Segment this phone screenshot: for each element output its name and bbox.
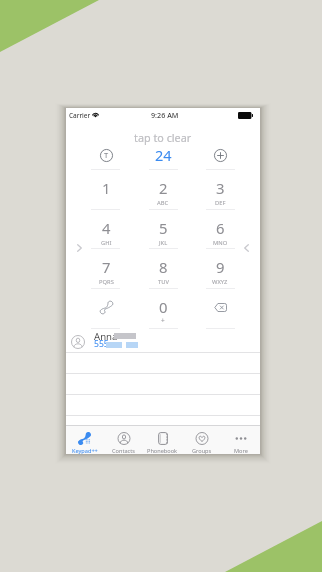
staticText: Anna (94, 330, 118, 343)
staticText: Phonebook (147, 447, 178, 455)
staticText: PQRS (99, 278, 114, 286)
button[interactable]: T9 search (91, 143, 121, 167)
button[interactable]: 24 (145, 143, 181, 167)
staticText: MNO (213, 239, 228, 247)
button[interactable]: Phonebook (143, 426, 182, 455)
staticText: DEF (215, 199, 226, 207)
staticText: 2 (159, 178, 168, 196)
button[interactable]: Delete (194, 289, 246, 328)
staticText: Keypad++ (72, 447, 98, 455)
button[interactable]: 7 (80, 249, 132, 288)
button[interactable]: 3 (194, 170, 246, 209)
staticText: Groups (192, 447, 212, 455)
button[interactable]: 1 (80, 170, 132, 209)
staticText: 6 (216, 218, 225, 236)
staticText: 7 (102, 257, 111, 275)
staticText: ABC (157, 199, 169, 207)
staticText: 24 (155, 145, 172, 165)
button[interactable]: Add contact (205, 143, 235, 167)
staticText: 9:26 AM (151, 110, 179, 120)
button[interactable]: 4 (80, 210, 132, 249)
button[interactable]: 6 (194, 210, 246, 249)
staticText: GHI (101, 239, 112, 247)
staticText: 8 (159, 257, 168, 275)
staticText: tap to clear (134, 130, 192, 145)
button[interactable]: Call (80, 289, 132, 328)
button[interactable]: Keypad++ (66, 426, 104, 455)
button[interactable]: Contacts (104, 426, 143, 455)
button[interactable]: 8 (137, 249, 189, 288)
button[interactable]: 0 (137, 289, 189, 328)
other: Previous page (244, 244, 249, 252)
staticText: Contacts (112, 447, 135, 455)
staticText: 4 (102, 218, 111, 236)
button[interactable]: More (221, 426, 260, 455)
staticText: 0 (159, 297, 168, 315)
button[interactable]: 5 (137, 210, 189, 249)
staticText: 5 (159, 218, 168, 236)
staticText: 3 (216, 178, 225, 196)
button[interactable]: 2 (137, 170, 189, 209)
button[interactable]: 9 (194, 249, 246, 288)
staticText: 1 (102, 178, 111, 196)
button[interactable]: tap to clear (118, 129, 208, 145)
staticText: 9 (216, 257, 225, 275)
staticText: + (161, 316, 165, 325)
staticText: 555- (94, 338, 112, 350)
staticText: More (234, 447, 248, 455)
button[interactable]: Anna (66, 331, 260, 352)
staticText: JKL (159, 239, 168, 247)
staticText: TUV (158, 278, 169, 286)
button[interactable]: Groups (182, 426, 221, 455)
staticText: Carrier (69, 111, 91, 120)
staticText: T (104, 150, 109, 160)
other: Next page (77, 244, 82, 252)
staticText: WXYZ (212, 278, 228, 286)
